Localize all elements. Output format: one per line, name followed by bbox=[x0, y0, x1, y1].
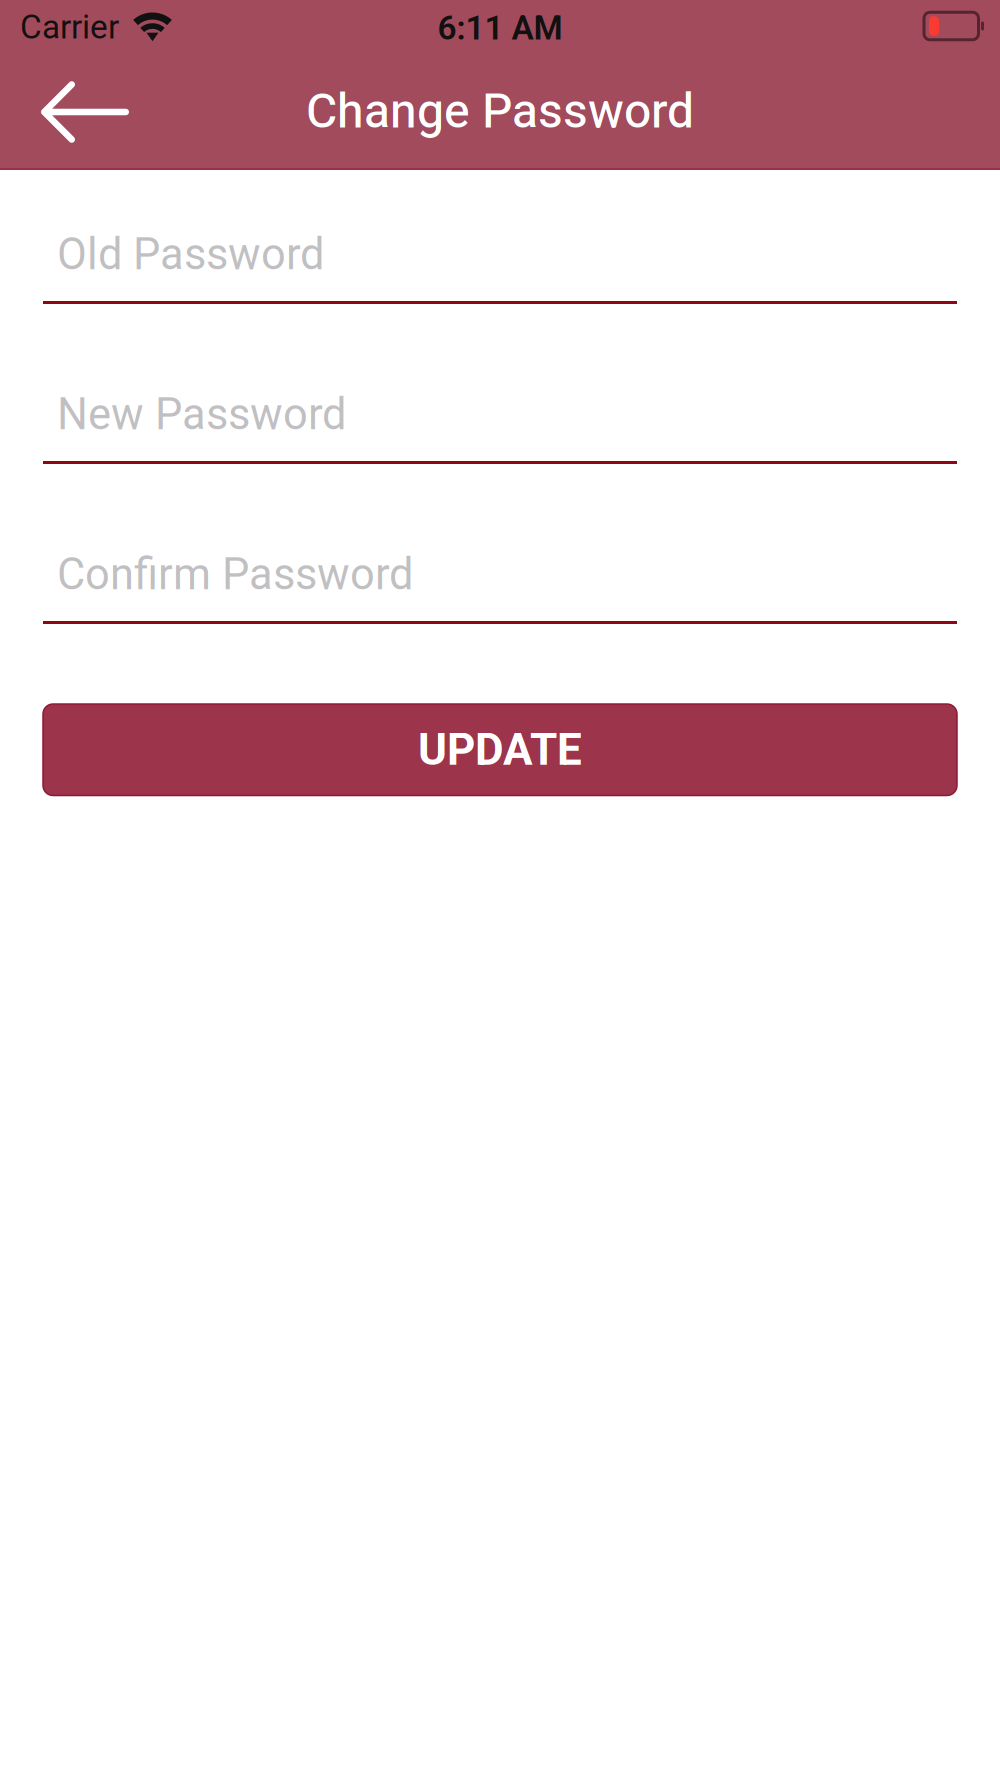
button[interactable]: Old Password bbox=[43, 170, 957, 304]
button[interactable]: UPDATE bbox=[43, 704, 957, 795]
staticText: Confirm Password bbox=[57, 548, 413, 600]
staticText: Change Password bbox=[306, 83, 694, 139]
button[interactable]: New Password bbox=[43, 304, 957, 464]
staticText: Carrier bbox=[20, 7, 119, 47]
staticText: Old Password bbox=[57, 228, 324, 280]
staticText: New Password bbox=[57, 388, 346, 440]
staticText: UPDATE bbox=[418, 724, 582, 776]
button[interactable]: Back bbox=[0, 62, 153, 170]
staticText: 6:11 AM bbox=[437, 8, 562, 48]
button[interactable]: Confirm Password bbox=[43, 464, 957, 624]
